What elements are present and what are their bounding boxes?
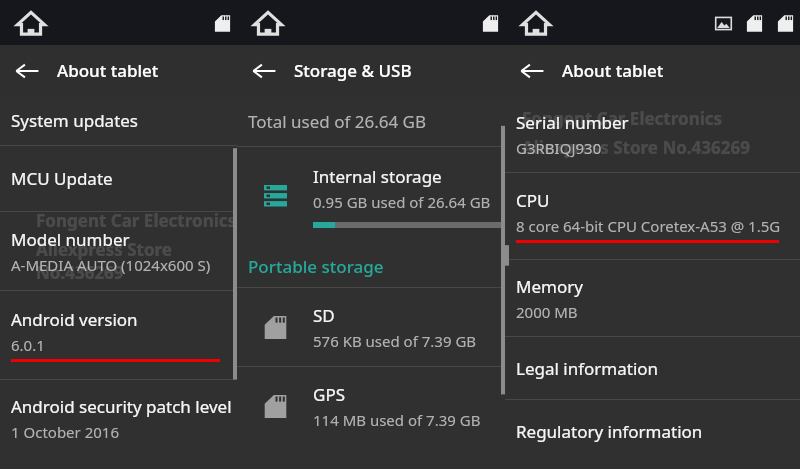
staticText: About tablet [57,59,159,82]
staticText: Internal storage [313,165,442,188]
button[interactable]: System updates [0,96,237,145]
staticText: Storage & USB [294,59,412,82]
staticText: G3RBIQJ930 [516,138,602,158]
staticText: 114 MB used of 7.39 GB [313,410,481,430]
staticText: Portable storage [248,255,384,278]
button[interactable]: SD card [774,12,796,34]
staticText: 6.0.1 [11,335,45,355]
staticText: 2000 MB [516,302,578,322]
button[interactable]: Back [513,52,551,90]
staticText: Legal information [516,357,659,380]
button[interactable]: Home [14,6,48,40]
button[interactable]: SD [237,288,505,366]
staticText: CPU [516,189,550,212]
staticText: Fongent Car Electronics [36,209,237,232]
staticText: Model number [11,228,130,251]
staticText: A-MEDIA AUTO (1024x600 S) [11,255,211,275]
staticText: GPS [313,383,345,406]
button[interactable]: SD card [743,12,765,34]
staticText: Total used of 26.64 GB [248,110,426,133]
staticText: 8 core 64-bit CPU Coretex-A53 @ 1.5G [516,216,781,236]
staticText: 1 October 2016 [11,422,119,442]
button[interactable]: Android version [0,291,237,379]
button[interactable]: Home [519,6,553,40]
staticText: Regulatory information [516,420,703,443]
staticText: About tablet [562,59,664,82]
button[interactable]: Serial number [505,96,800,172]
button[interactable]: Photos [712,12,734,34]
staticText: System updates [11,109,139,132]
staticText: Aliexpress Store No.436269 [522,136,750,159]
button[interactable]: Memory [505,260,800,336]
staticText: SD [313,304,335,327]
button[interactable]: GPS [237,367,505,445]
button[interactable]: Android security patch level [0,380,237,456]
button[interactable]: SD card [211,12,233,34]
button[interactable]: Legal information [505,337,800,399]
staticText: 0.95 GB used of 26.64 GB [313,192,491,212]
button[interactable]: Back [245,52,283,90]
button[interactable]: Home [251,6,285,40]
button[interactable]: MCU Update [0,146,237,211]
button[interactable]: Back [8,52,46,90]
staticText: Android version [11,308,138,331]
button[interactable]: Regulatory information [505,400,800,462]
staticText: 576 KB used of 7.39 GB [313,331,477,351]
button[interactable]: SD card [479,12,501,34]
staticText: Serial number [516,111,629,134]
staticText: Aliexpress Store No.436269 [36,238,237,284]
button[interactable]: Internal storage [237,147,505,245]
staticText: Memory [516,275,583,298]
staticText: Fongent Car Electronics [522,107,723,130]
button[interactable]: Model number [0,212,237,290]
staticText: MCU Update [11,167,113,190]
button[interactable]: CPU [505,173,800,259]
staticText: Android security patch level [11,395,232,418]
